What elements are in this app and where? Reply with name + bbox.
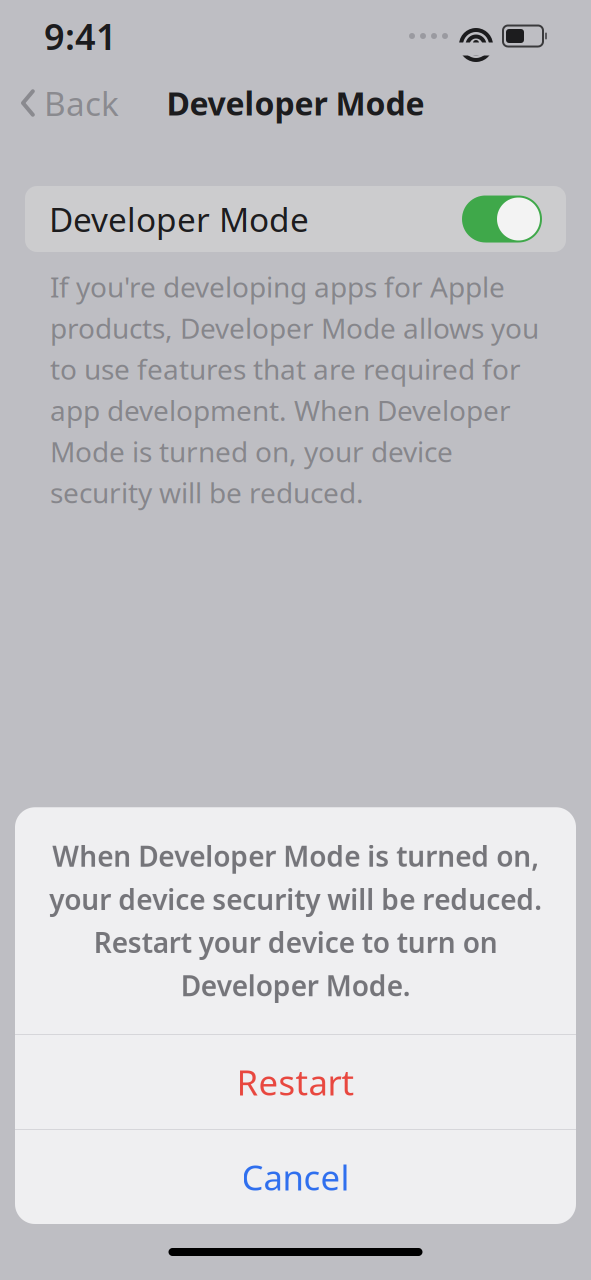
staticText: When Developer Mode is turned on, your d… — [49, 837, 542, 1004]
button[interactable]: Cancel — [15, 1130, 576, 1224]
button[interactable]: Restart — [15, 1035, 576, 1129]
staticText: Developer Mode — [166, 82, 424, 124]
button[interactable]: Back — [6, 73, 133, 133]
staticText: 9:41 — [44, 12, 117, 60]
staticText: Cancel — [241, 1154, 349, 1200]
staticText: Back — [44, 81, 119, 125]
staticText: Developer Mode — [49, 197, 309, 241]
staticText: Restart — [236, 1059, 354, 1105]
button[interactable]: Developer Mode toggle, on — [462, 195, 542, 242]
staticText: If you're developing apps for Apple prod… — [50, 268, 539, 511]
